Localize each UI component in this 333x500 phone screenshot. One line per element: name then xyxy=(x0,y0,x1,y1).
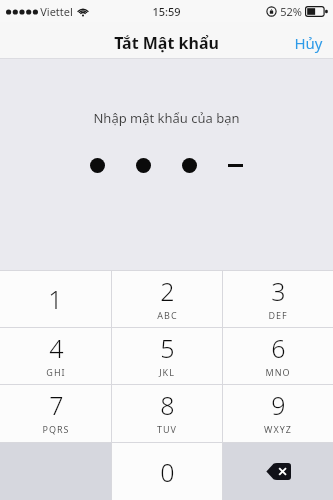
staticText: 8 xyxy=(160,388,175,422)
button[interactable]: 6 xyxy=(223,328,333,384)
staticText: 3 xyxy=(271,274,286,308)
button[interactable]: Delete xyxy=(223,443,333,500)
staticText: Hủy xyxy=(294,33,323,53)
button[interactable]: 0 xyxy=(112,443,222,500)
staticText: JKL xyxy=(159,366,175,378)
staticText: TUV xyxy=(157,423,177,435)
button[interactable]: 1 xyxy=(0,271,111,327)
button[interactable]: 7 xyxy=(0,385,111,442)
button[interactable]: 3 xyxy=(223,271,333,327)
staticText: MNO xyxy=(265,366,291,378)
button[interactable]: 9 xyxy=(223,385,333,442)
staticText: 6 xyxy=(271,331,286,365)
button[interactable]: 5 xyxy=(112,328,222,384)
staticText: WXYZ xyxy=(264,423,292,435)
staticText: DEF xyxy=(268,309,288,321)
staticText: 7 xyxy=(49,388,64,422)
staticText: 1 xyxy=(48,282,63,316)
staticText: 52% xyxy=(280,4,302,19)
staticText: PQRS xyxy=(42,423,70,435)
staticText: 2 xyxy=(160,274,175,308)
staticText: Nhập mật khẩu của bạn xyxy=(93,109,240,127)
staticText: 15:59 xyxy=(152,4,181,19)
button[interactable]: 4 xyxy=(0,328,111,384)
staticText: 0 xyxy=(160,455,175,489)
staticText: 4 xyxy=(49,331,64,365)
staticText: 5 xyxy=(160,331,175,365)
button[interactable]: Hủy xyxy=(284,27,333,59)
button[interactable]: 2 xyxy=(112,271,222,327)
staticText: GHI xyxy=(46,366,66,378)
staticText: ABC xyxy=(157,309,178,321)
staticText: 9 xyxy=(271,388,286,422)
staticText: Tắt Mật khẩu xyxy=(114,32,219,54)
button[interactable]: 8 xyxy=(112,385,222,442)
staticText: Viettel xyxy=(40,4,73,19)
